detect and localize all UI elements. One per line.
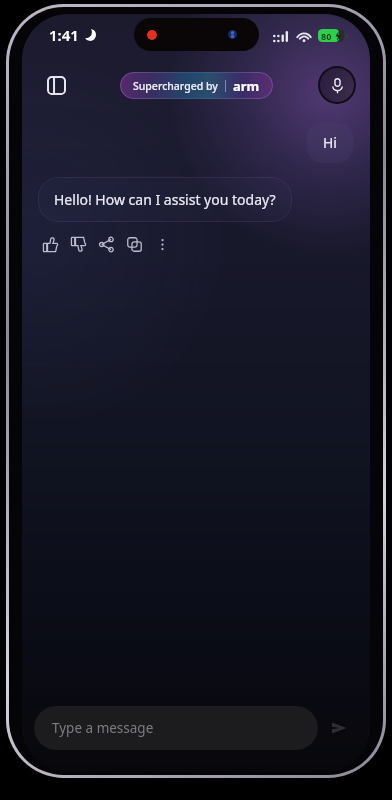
button[interactable]: More options — [148, 230, 176, 258]
staticText: 80 — [321, 30, 332, 42]
button[interactable]: Hi — [306, 122, 354, 163]
button[interactable]: Send message — [318, 707, 360, 749]
staticText: Hi — [323, 133, 337, 152]
staticText: arm — [233, 77, 260, 95]
staticText: Type a message — [52, 719, 154, 737]
button[interactable]: Copy — [120, 230, 148, 258]
staticText: 1:41 — [49, 25, 79, 45]
staticText: Supercharged by — [133, 79, 218, 93]
button[interactable]: Dislike — [64, 230, 92, 258]
button[interactable]: Open sidebar — [36, 65, 76, 105]
button[interactable]: Supercharged by — [120, 72, 273, 99]
staticText: Hello! How can I assist you today? — [54, 190, 276, 209]
button[interactable]: Hello! How can I assist you today? — [38, 177, 292, 222]
button[interactable]: Type a message — [34, 706, 318, 750]
button[interactable]: Voice input — [318, 66, 356, 104]
button[interactable]: Share — [92, 230, 120, 258]
button[interactable]: Like — [36, 230, 64, 258]
